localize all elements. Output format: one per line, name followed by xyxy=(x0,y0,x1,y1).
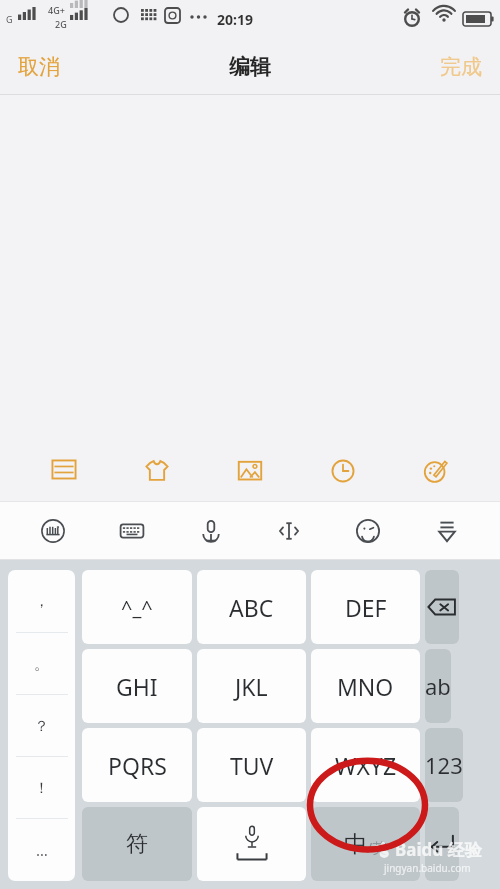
staticText: 4G+ xyxy=(48,4,65,16)
staticText: GHI xyxy=(116,671,158,702)
button[interactable]: WXYZ xyxy=(311,728,420,802)
staticText: ！ xyxy=(34,779,49,798)
staticText: … xyxy=(36,840,48,860)
staticText: 取消 xyxy=(18,54,60,80)
button[interactable]: 123 xyxy=(425,728,463,802)
staticText: PQRS xyxy=(108,750,167,781)
button[interactable]: ABC xyxy=(197,570,306,644)
staticText: ab xyxy=(425,671,451,701)
staticText: 20:19 xyxy=(217,10,253,29)
button[interactable]: PQRS xyxy=(82,728,192,802)
button[interactable]: Space xyxy=(197,807,306,881)
button[interactable]: TUV xyxy=(197,728,306,802)
button[interactable]: DEF xyxy=(311,570,420,644)
staticText: ， xyxy=(34,592,49,611)
button[interactable]: JKL xyxy=(197,649,306,723)
button[interactable]: Input method xyxy=(27,505,79,557)
staticText: WXYZ xyxy=(335,750,397,781)
button[interactable]: MNO xyxy=(311,649,420,723)
button[interactable]: GHI xyxy=(82,649,192,723)
button[interactable]: … xyxy=(8,819,75,881)
button[interactable]: Text settings xyxy=(35,442,93,500)
button[interactable]: ！ xyxy=(8,757,75,819)
button[interactable]: Hide keyboard xyxy=(421,505,473,557)
button[interactable]: Voice input xyxy=(185,505,237,557)
button[interactable]: Palette xyxy=(407,442,465,500)
button[interactable]: ^_^ xyxy=(82,570,192,644)
button[interactable]: Images xyxy=(221,442,279,500)
button[interactable]: 取消 xyxy=(0,38,78,95)
staticText: jingyan.baidu.com xyxy=(384,861,471,875)
staticText: DEF xyxy=(345,592,387,623)
staticText: G xyxy=(6,13,13,25)
button[interactable]: ab xyxy=(425,649,451,723)
staticText: 符 xyxy=(126,830,148,858)
staticText: /英 xyxy=(367,838,387,857)
button[interactable]: 符 xyxy=(82,807,192,881)
staticText: 2G xyxy=(55,18,67,30)
button[interactable]: 。 xyxy=(8,633,75,695)
staticText: 完成 xyxy=(440,54,482,80)
staticText: TUV xyxy=(230,750,274,781)
button[interactable]: ？ xyxy=(8,695,75,757)
staticText: ？ xyxy=(34,717,49,736)
staticText: 中 xyxy=(344,830,367,859)
button[interactable]: Emoji xyxy=(342,505,394,557)
staticText: MNO xyxy=(337,671,394,702)
button[interactable]: Backspace xyxy=(425,570,459,644)
staticText: 。 xyxy=(34,655,49,674)
button[interactable]: Keyboard layout xyxy=(106,505,158,557)
staticText: ABC xyxy=(229,592,274,623)
staticText: JKL xyxy=(235,671,268,702)
staticText: 123 xyxy=(425,750,463,780)
button[interactable]: Enter xyxy=(425,807,459,881)
button[interactable]: Recent xyxy=(314,442,372,500)
staticText: 编辑 xyxy=(229,54,271,80)
button[interactable]: Skins xyxy=(128,442,186,500)
button[interactable]: ， xyxy=(8,570,75,633)
button[interactable]: 中 xyxy=(311,807,420,881)
staticText: Baidu 经验 xyxy=(395,838,482,861)
button[interactable]: 完成 xyxy=(422,38,500,95)
staticText: ^_^ xyxy=(121,594,153,621)
button[interactable]: Move cursor xyxy=(263,505,315,557)
